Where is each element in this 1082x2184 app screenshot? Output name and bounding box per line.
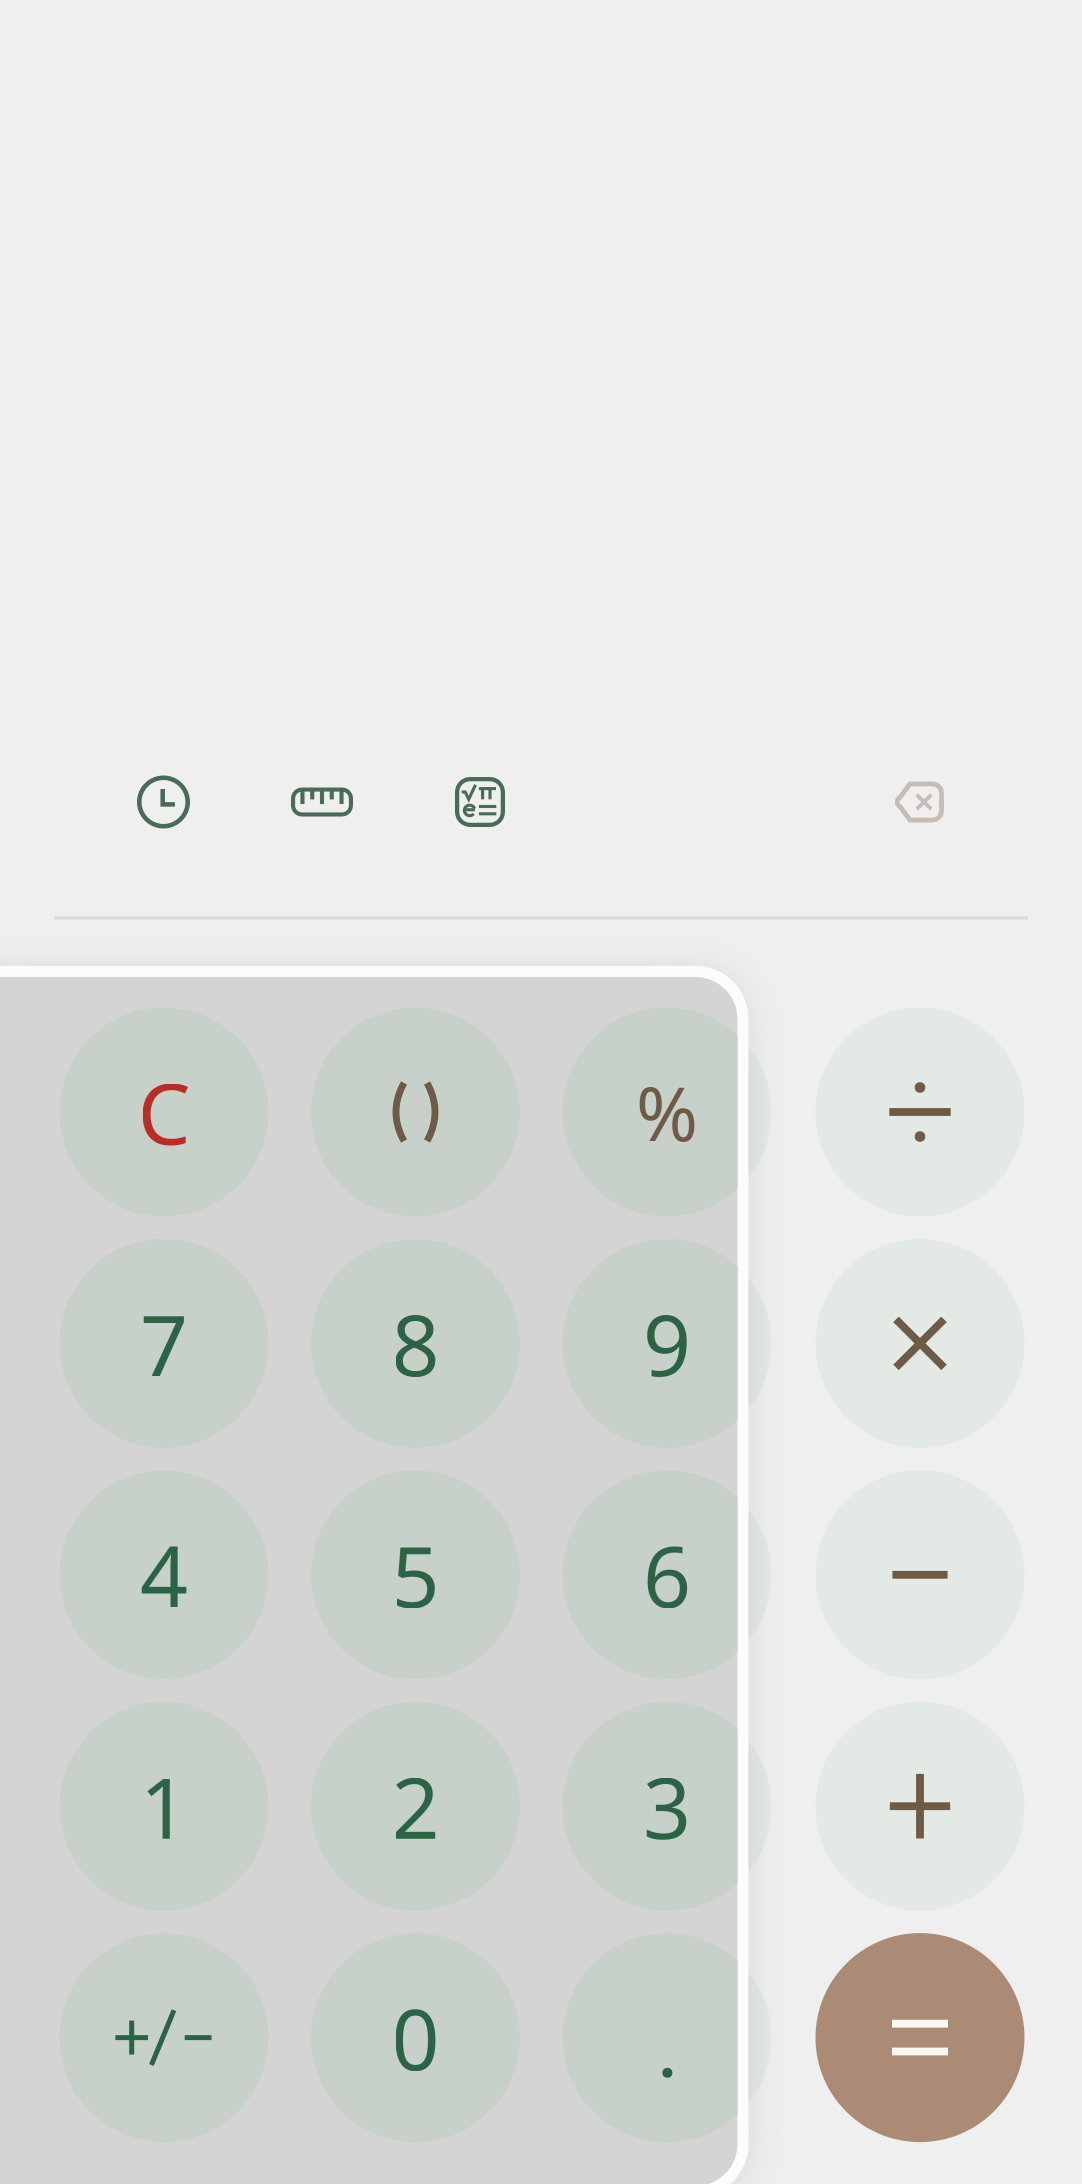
staticText: C bbox=[137, 1056, 190, 1168]
button[interactable]: Zero bbox=[311, 1933, 520, 2142]
staticText: C bbox=[137, 1056, 190, 1168]
staticText: 8 bbox=[391, 1288, 439, 1399]
button[interactable]: Clear bbox=[59, 1007, 268, 1216]
button[interactable]: Three bbox=[562, 1702, 771, 1911]
button[interactable]: Equals bbox=[815, 1933, 1024, 2142]
staticText: % bbox=[636, 1062, 698, 1162]
staticText: 3 bbox=[643, 1750, 691, 1862]
staticText: 2 bbox=[391, 1750, 439, 1862]
button[interactable]: Two bbox=[311, 1702, 520, 1911]
button[interactable]: Add bbox=[815, 1702, 1024, 1911]
button[interactable]: History bbox=[111, 750, 215, 854]
button[interactable]: Four bbox=[59, 1470, 268, 1679]
button[interactable]: Nine bbox=[562, 1239, 771, 1448]
staticText: 6 bbox=[643, 1519, 691, 1630]
staticText: % bbox=[636, 1062, 698, 1162]
staticText: 9 bbox=[643, 1288, 691, 1399]
button[interactable]: Decimal point bbox=[562, 1933, 771, 2142]
button[interactable]: Multiply bbox=[815, 1239, 1024, 1448]
button[interactable]: Unit converter bbox=[270, 750, 374, 854]
staticText: 2 bbox=[391, 1750, 439, 1862]
button[interactable]: Six bbox=[562, 1470, 771, 1679]
button[interactable]: Toggle sign bbox=[59, 1933, 268, 2142]
button[interactable]: Scientific calculator bbox=[428, 750, 532, 854]
staticText: 5 bbox=[391, 1519, 439, 1630]
staticText: 9 bbox=[643, 1288, 691, 1399]
staticText: 8 bbox=[391, 1288, 439, 1399]
button[interactable]: Percent bbox=[562, 1007, 771, 1216]
button[interactable]: Divide bbox=[815, 1007, 1024, 1216]
button[interactable]: Five bbox=[311, 1470, 520, 1679]
staticText: 3 bbox=[643, 1750, 691, 1862]
staticText: 4 bbox=[140, 1519, 188, 1630]
staticText: 5 bbox=[391, 1519, 439, 1630]
staticText: 6 bbox=[643, 1519, 691, 1630]
staticText: 4 bbox=[140, 1519, 188, 1630]
staticText: 0 bbox=[391, 1982, 439, 2093]
staticText: 7 bbox=[140, 1288, 188, 1399]
button[interactable]: Parentheses bbox=[311, 1007, 520, 1216]
button[interactable]: Eight bbox=[311, 1239, 520, 1448]
button[interactable]: Subtract bbox=[815, 1470, 1024, 1679]
staticText: 1 bbox=[140, 1750, 188, 1862]
button[interactable]: Delete bbox=[866, 750, 970, 854]
staticText: 1 bbox=[140, 1750, 188, 1862]
staticText: 0 bbox=[391, 1982, 439, 2093]
button[interactable]: One bbox=[59, 1702, 268, 1911]
staticText: 7 bbox=[140, 1288, 188, 1399]
button[interactable]: Seven bbox=[59, 1239, 268, 1448]
